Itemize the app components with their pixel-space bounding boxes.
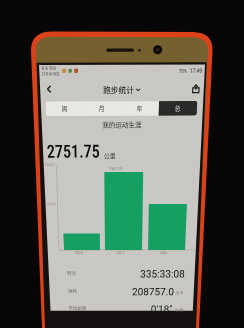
- button[interactable]: 时长: [21, 193, 155, 213]
- staticText: 208757.0: [95, 217, 144, 230]
- staticText: 总: [137, 34, 144, 43]
- staticText: 我的运动生涯: [0, 48, 166, 58]
- button[interactable]: 总: [121, 32, 160, 45]
- staticText: /公里: [144, 242, 155, 249]
- staticText: 大卡: [145, 222, 155, 229]
- staticText: 年: [98, 34, 105, 43]
- button[interactable]: 平均配速: [21, 233, 155, 253]
- staticText: 335:33:08: [104, 197, 155, 210]
- staticText: 月: [59, 34, 66, 43]
- button[interactable]: 月: [43, 32, 82, 45]
- button[interactable]: 年: [82, 32, 121, 45]
- button[interactable]: 消耗: [21, 213, 155, 233]
- staticText: 2018: [31, 179, 40, 183]
- staticText: 0'18": [117, 237, 143, 250]
- button[interactable]: 周: [5, 32, 43, 45]
- staticText: 平均配速: [21, 239, 42, 247]
- staticText: 2751.75: [4, 68, 60, 88]
